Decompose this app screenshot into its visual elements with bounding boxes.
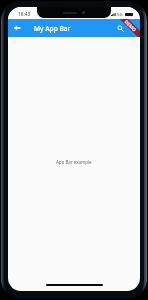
staticText: 16:43 [18, 11, 31, 18]
staticText: App Bar example [56, 159, 92, 165]
staticText: DEMO [123, 19, 138, 33]
button[interactable]: Back [8, 19, 26, 37]
button[interactable]: Search [114, 22, 126, 34]
staticText: 5G [117, 11, 123, 17]
staticText: My App Bar [34, 24, 71, 33]
